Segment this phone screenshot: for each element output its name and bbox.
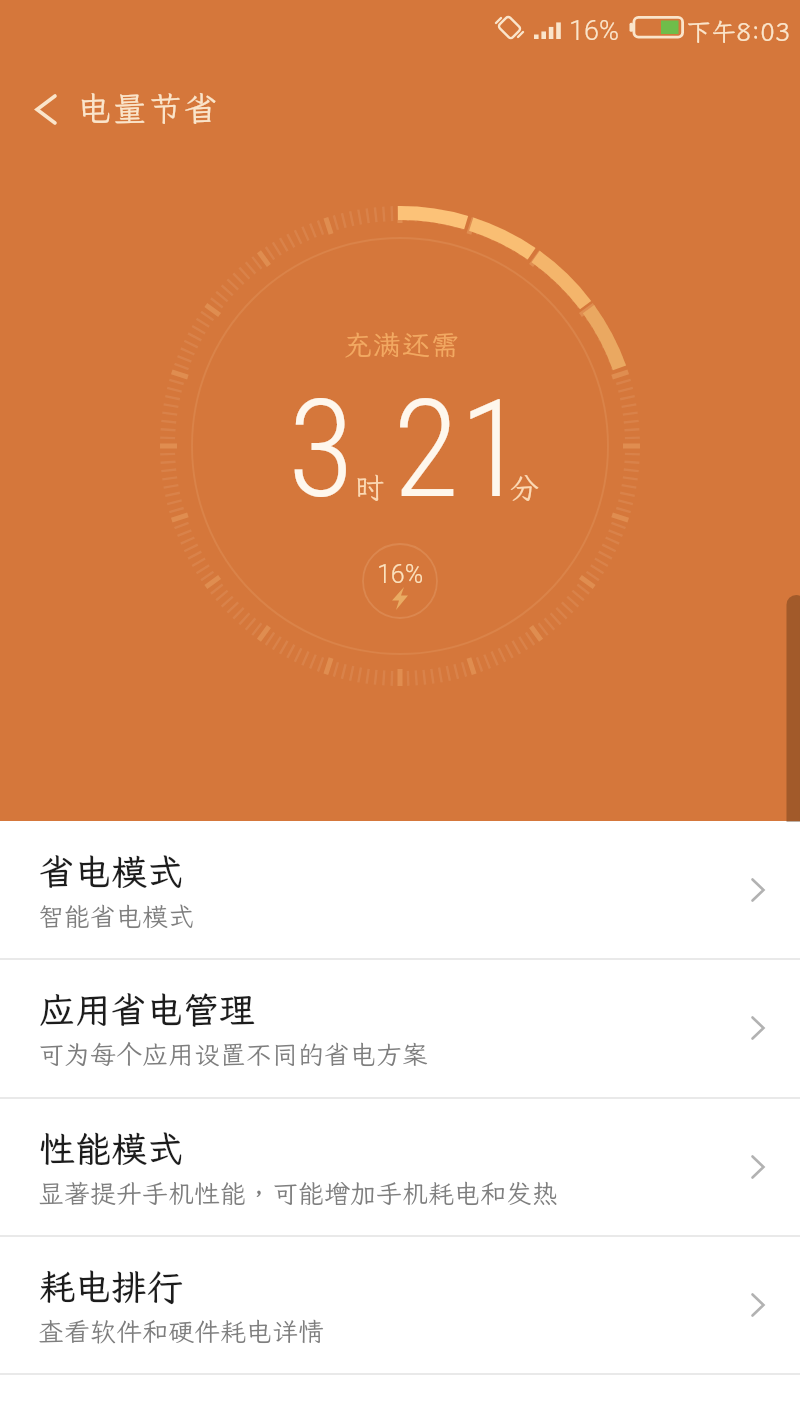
staticText: 性能模式 <box>39 1125 184 1172</box>
staticText: 16% <box>0 560 800 589</box>
staticText: 充满还需 <box>2 326 800 363</box>
button[interactable]: 省电模式 <box>0 821 800 958</box>
staticText: 耗电排行 <box>39 1263 184 1310</box>
staticText: 查看软件和硬件耗电详情 <box>38 1314 325 1348</box>
button[interactable]: 应用省电管理 <box>0 959 800 1096</box>
staticText: 分 <box>510 468 540 506</box>
staticText: 显著提升手机性能，可能增加手机耗电和发热 <box>38 1176 559 1210</box>
other: Back <box>20 81 72 137</box>
staticText: 16% <box>569 15 619 47</box>
staticText: 下午8:03 <box>600 15 790 48</box>
button[interactable]: Back <box>20 76 220 142</box>
staticText: 智能省电模式 <box>38 899 195 933</box>
staticText: 时 <box>355 468 385 506</box>
staticText: 可为每个应用设置不同的省电方案 <box>38 1037 429 1071</box>
staticText: 3 <box>288 370 355 529</box>
staticText: 21 <box>393 370 526 529</box>
staticText: 电量节省 <box>77 86 220 131</box>
button[interactable]: 耗电排行 <box>0 1236 800 1373</box>
button[interactable]: 性能模式 <box>0 1098 800 1235</box>
staticText: 省电模式 <box>39 848 184 895</box>
staticText: 应用省电管理 <box>39 986 256 1033</box>
